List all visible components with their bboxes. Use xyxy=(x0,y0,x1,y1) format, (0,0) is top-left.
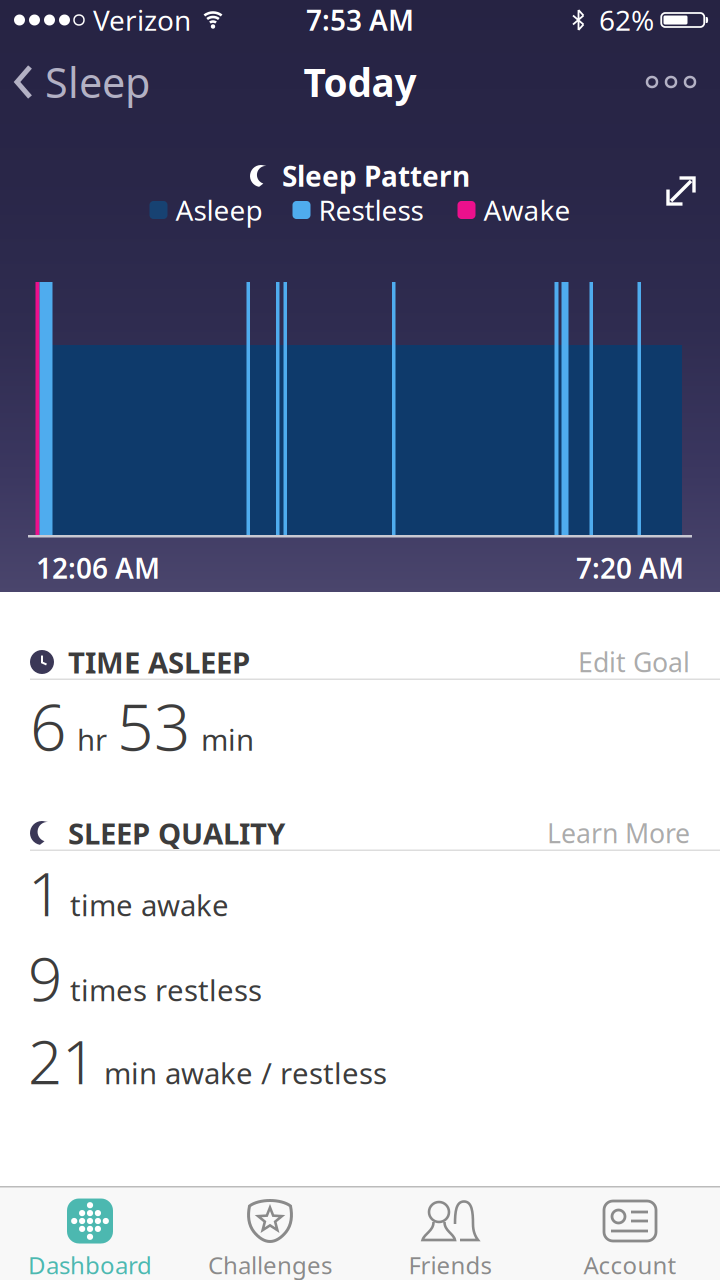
staticText: 1 xyxy=(28,853,62,933)
staticText: Account xyxy=(583,1249,676,1280)
staticText: times restless xyxy=(70,970,262,1009)
staticText: 7:53 AM xyxy=(306,1,414,39)
staticText: 53 xyxy=(117,683,191,768)
staticText: Today xyxy=(303,56,416,108)
staticText: 62% xyxy=(599,1,654,39)
staticText: Awake xyxy=(483,191,570,229)
button[interactable]: Challenges xyxy=(180,1186,360,1280)
staticText: Dashboard xyxy=(28,1249,152,1280)
staticText: TIME ASLEEP xyxy=(68,642,250,681)
staticText: 12:06 AM xyxy=(36,549,160,587)
staticText: hr xyxy=(77,720,107,759)
staticText: Sleep Pattern xyxy=(282,157,470,195)
staticText: 7:20 AM xyxy=(576,549,684,587)
staticText: Restless xyxy=(318,191,423,229)
button[interactable]: Dashboard xyxy=(0,1186,180,1280)
staticText: 9 xyxy=(28,938,62,1018)
button[interactable] xyxy=(647,77,720,87)
staticText: Challenges xyxy=(208,1249,332,1280)
button[interactable]: Edit Goal xyxy=(578,644,690,680)
staticText: SLEEP QUALITY xyxy=(68,813,285,852)
staticText: Friends xyxy=(408,1249,491,1280)
staticText: Learn More xyxy=(547,815,690,851)
button[interactable]: Sleep xyxy=(0,55,150,109)
button[interactable] xyxy=(663,173,720,209)
button[interactable]: Learn More xyxy=(547,815,690,851)
staticText: Edit Goal xyxy=(578,644,690,680)
staticText: min awake / restless xyxy=(104,1053,387,1092)
staticText: 6 xyxy=(30,683,67,768)
staticText: 21 xyxy=(28,1021,96,1101)
staticText: time awake xyxy=(70,885,229,924)
staticText: Sleep xyxy=(45,55,150,109)
staticText: Verizon xyxy=(93,1,191,39)
staticText: Asleep xyxy=(175,191,262,229)
button[interactable]: Account xyxy=(540,1186,720,1280)
staticText: min xyxy=(201,720,254,759)
button[interactable]: Friends xyxy=(360,1186,540,1280)
